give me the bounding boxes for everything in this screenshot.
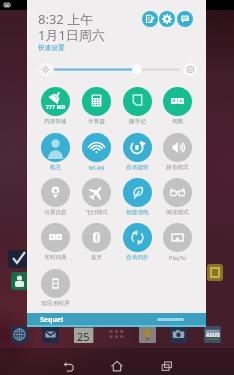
button[interactable]: ASUS (204, 326, 221, 343)
button[interactable]: 实时词典 (33, 223, 78, 261)
button[interactable]: Calendar (74, 326, 91, 343)
button[interactable]: Settings (159, 11, 175, 27)
staticText: 蓝牙 (74, 254, 119, 261)
button[interactable]: 智能省电 (115, 178, 160, 216)
staticText: 777 MB (41, 103, 70, 110)
button[interactable]: Auto brightness (39, 63, 52, 76)
staticText: ASUS (206, 331, 221, 338)
staticText: 8:32 上午 (38, 10, 94, 28)
staticText: 静音模式 (155, 164, 200, 171)
button[interactable]: 双应用程序 (33, 269, 78, 307)
staticText: 实时词典 (33, 254, 78, 261)
button[interactable]: All apps (107, 326, 124, 343)
button[interactable]: Edit notes (142, 11, 158, 27)
button[interactable]: 自动旋转 (115, 133, 160, 171)
staticText: 双应用程序 (33, 300, 78, 307)
staticText: 25 (77, 329, 90, 344)
staticText: 智能省电 (115, 209, 160, 216)
button[interactable]: Brightness slider (53, 62, 181, 77)
button[interactable]: Recent apps (157, 356, 177, 375)
staticText: 自动旋转 (115, 164, 160, 171)
button[interactable]: 阅读模式 (155, 178, 200, 216)
staticText: 词典 (155, 118, 200, 125)
staticText: 机主 (33, 164, 78, 171)
button[interactable]: Display settings (184, 63, 197, 76)
button[interactable]: 计算器 (74, 87, 119, 125)
button[interactable]: Gallery (139, 326, 156, 343)
button[interactable]: 随手记 (115, 87, 160, 125)
staticText: 位置信息 (33, 209, 78, 216)
button[interactable]: Notifications (177, 11, 193, 27)
button[interactable]: Camera (170, 326, 187, 343)
button[interactable]: PlayTo (155, 223, 200, 262)
staticText: Sequel (40, 315, 64, 325)
button[interactable]: WLAN (74, 133, 119, 172)
staticText: 快速设置 (38, 44, 65, 52)
staticText: 内存加速 (33, 118, 78, 125)
staticText: 自动同步 (115, 254, 160, 261)
button[interactable]: 位置信息 (33, 178, 78, 216)
staticText: WLAN (74, 164, 119, 172)
button[interactable]: 蓝牙 (74, 223, 119, 261)
button[interactable]: Back (58, 356, 78, 375)
staticText: 飞行模式 (74, 209, 119, 216)
staticText: PlayTo (155, 254, 200, 262)
staticText: 1月1日周六 (38, 26, 105, 44)
staticText: 计算器 (74, 118, 119, 125)
button[interactable]: Email (42, 326, 59, 343)
staticText: 阅读模式 (155, 209, 200, 216)
button[interactable]: 词典 (155, 87, 200, 125)
button[interactable]: 机主 (33, 133, 78, 171)
button[interactable]: 静音模式 (155, 133, 200, 171)
button[interactable]: Sequel (27, 313, 206, 325)
button[interactable]: 777 MB (33, 87, 78, 125)
button[interactable]: 飞行模式 (74, 178, 119, 216)
staticText: 随手记 (115, 118, 160, 125)
button[interactable]: Home (107, 356, 127, 375)
button[interactable]: Browser (11, 326, 28, 343)
button[interactable]: 自动同步 (115, 223, 160, 261)
